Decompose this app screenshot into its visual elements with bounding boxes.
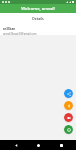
button[interactable]: Video xyxy=(64,113,73,122)
button[interactable]: Recent apps xyxy=(54,140,68,150)
button[interactable]: Home xyxy=(31,140,45,150)
button[interactable]: Share xyxy=(64,89,73,98)
button[interactable]: Back xyxy=(9,140,23,150)
staticText: aroral33pvat33@gmail.com xyxy=(3,32,37,35)
staticText: ar33ban xyxy=(3,27,16,31)
button[interactable]: Welcome, aroral! xyxy=(0,4,76,13)
staticText: Welcome, aroral! xyxy=(21,6,55,12)
button[interactable]: Record xyxy=(64,125,73,134)
staticText: Details xyxy=(32,16,44,21)
button[interactable]: Bluetooth xyxy=(64,101,73,110)
